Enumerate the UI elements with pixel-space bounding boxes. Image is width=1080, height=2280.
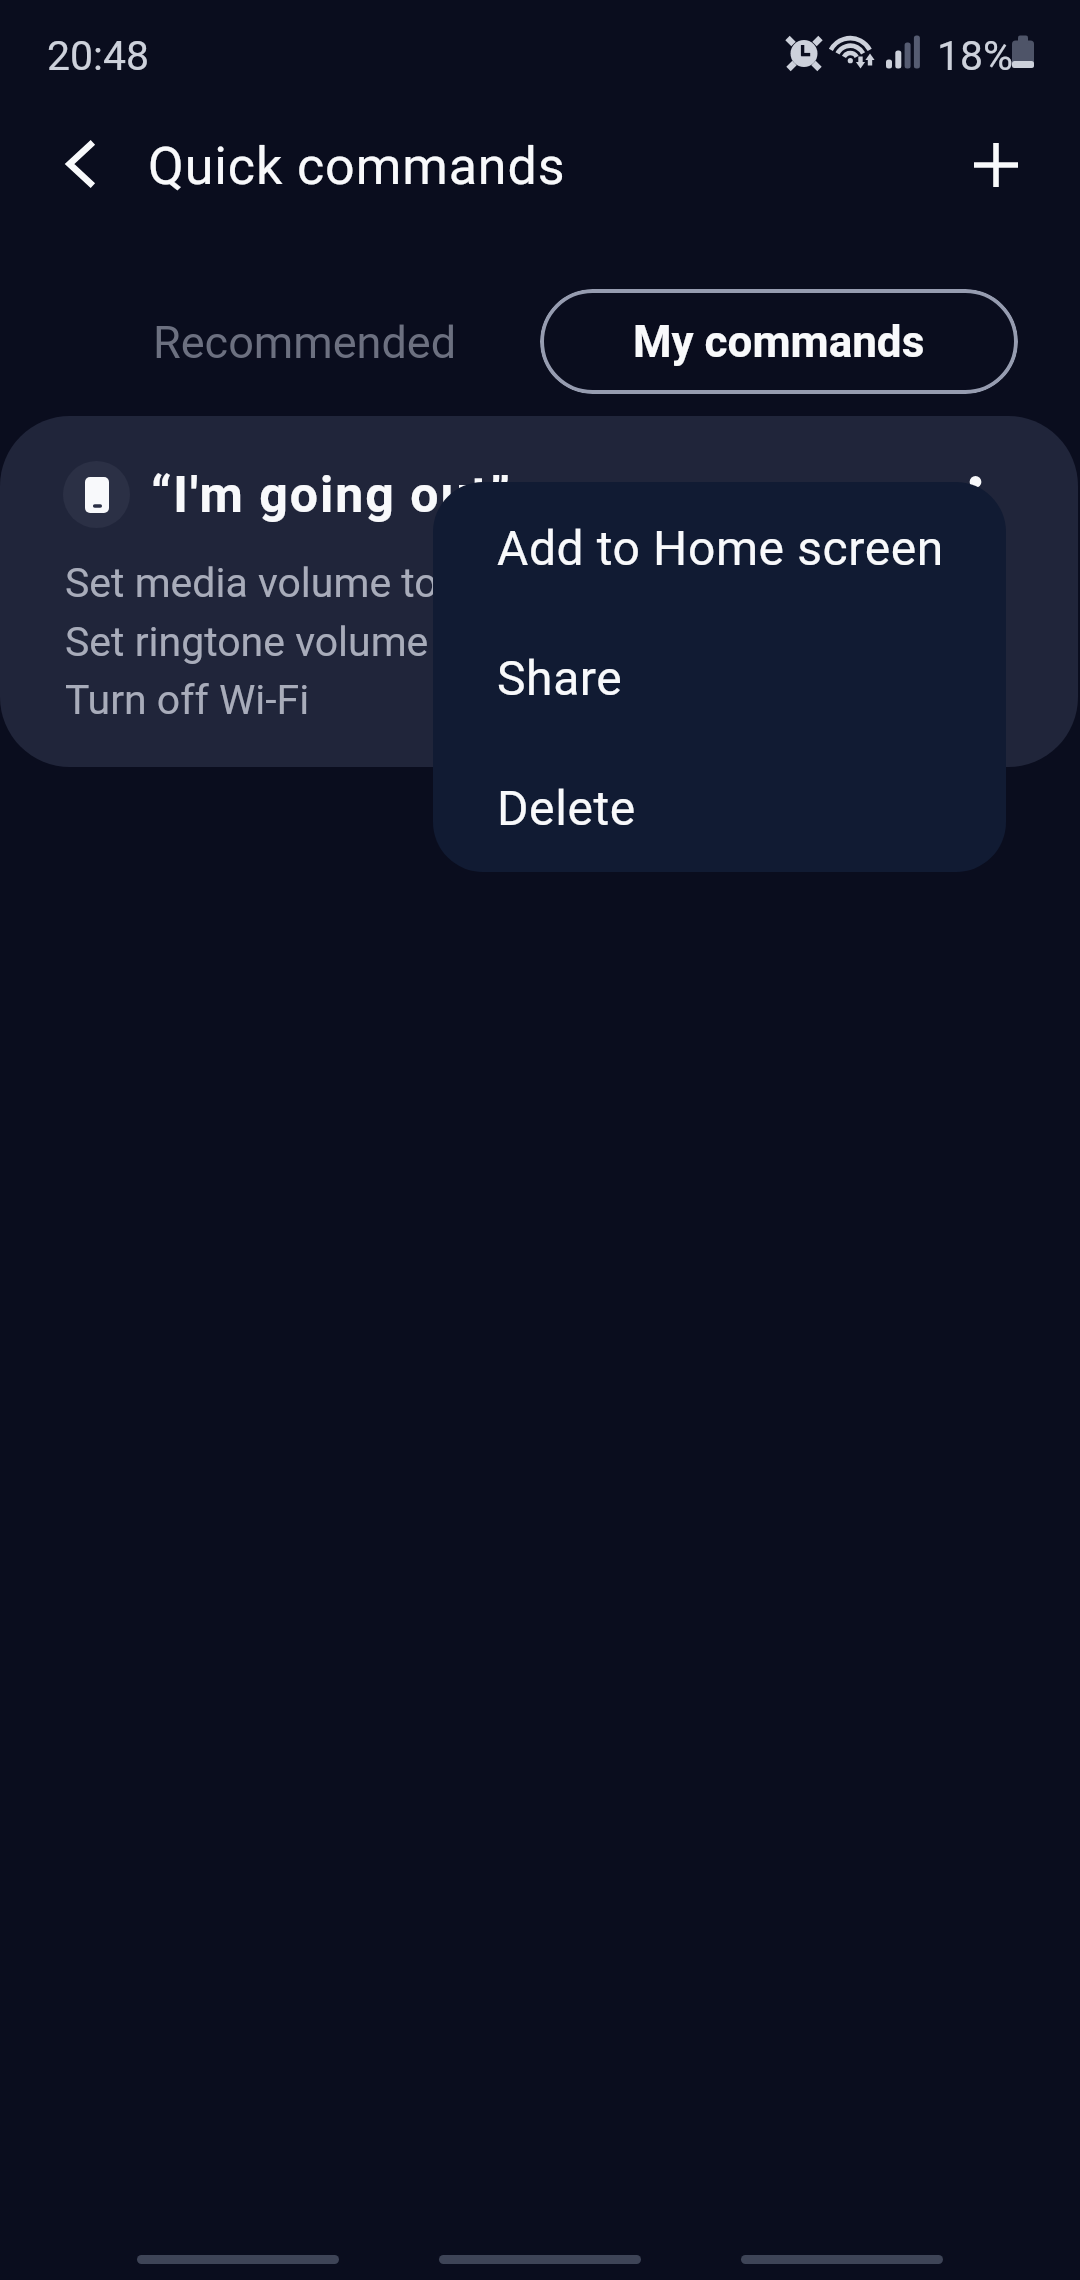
button[interactable]: More options <box>934 441 1016 523</box>
staticText: Set ringtone volume to 0 <box>65 618 509 666</box>
button[interactable]: Add <box>951 120 1041 210</box>
button[interactable]: Add to Home screen <box>433 482 1006 612</box>
button[interactable]: “I'm going out” <box>0 416 1078 767</box>
staticText: 18% <box>937 32 1014 80</box>
staticText: Turn off Wi-Fi <box>65 676 310 724</box>
staticText: 20:48 <box>47 32 150 80</box>
button[interactable]: Recommended <box>110 290 500 394</box>
staticText: My commands <box>633 316 925 368</box>
staticText: Recommended <box>153 316 457 369</box>
button[interactable]: Delete <box>433 742 1006 872</box>
staticText: Add to Home screen <box>497 520 944 576</box>
staticText: Set media volume to 0 <box>65 559 471 607</box>
staticText: Delete <box>497 780 636 836</box>
button[interactable]: Back <box>35 119 125 209</box>
button[interactable]: My commands <box>540 289 1018 394</box>
staticText: “I'm going out” <box>151 466 512 525</box>
staticText: Quick commands <box>148 136 566 197</box>
staticText: Share <box>497 650 623 706</box>
button[interactable]: Share <box>433 612 1006 742</box>
